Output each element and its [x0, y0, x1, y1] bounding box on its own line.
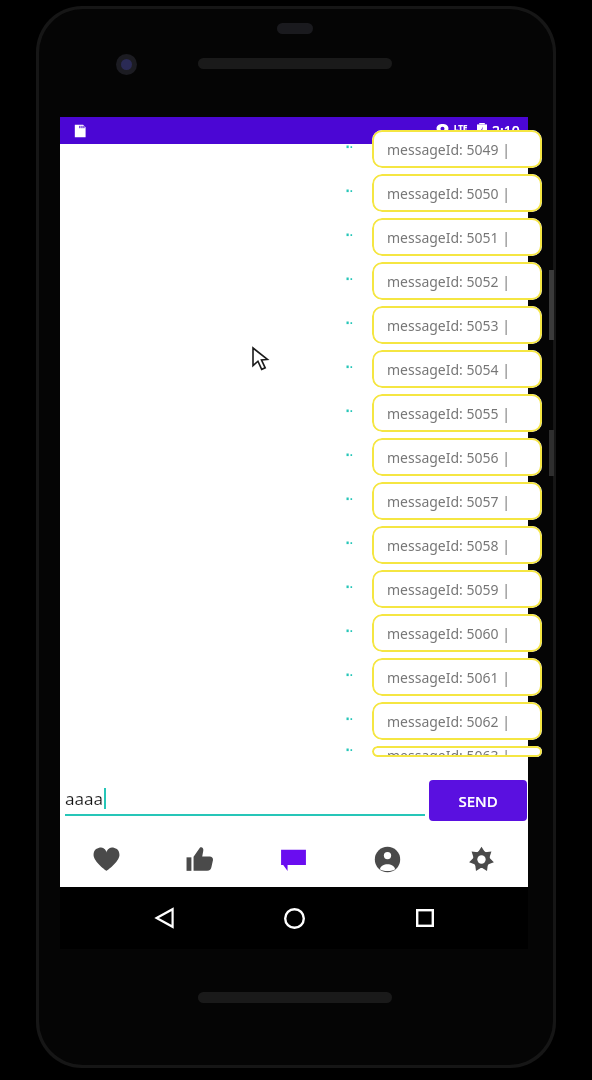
staticText: messageId: 5059 |: [387, 580, 510, 599]
button[interactable]: aaaa: [65, 787, 425, 816]
button[interactable]: messageId: 5049 |: [372, 130, 542, 168]
button[interactable]: Account: [340, 831, 434, 887]
button[interactable]: Home: [275, 899, 313, 937]
button[interactable]: messageId: 5053 |: [372, 306, 542, 344]
button[interactable]: messageId: 5063 |: [372, 746, 542, 757]
button[interactable]: Likes: [153, 831, 246, 887]
staticText: 2:10: [492, 121, 520, 140]
button[interactable]: messageId: 5056 |: [372, 438, 542, 476]
button[interactable]: messageId: 5052 |: [372, 262, 542, 300]
button[interactable]: messageId: 5055 |: [372, 394, 542, 432]
button[interactable]: SEND: [429, 780, 527, 821]
staticText: messageId: 5056 |: [387, 448, 510, 467]
button[interactable]: messageId: 5050 |: [372, 174, 542, 212]
button[interactable]: messageId: 5060 |: [372, 614, 542, 652]
staticText: messageId: 5060 |: [387, 624, 510, 643]
button[interactable]: Messages: [246, 831, 340, 887]
staticText: messageId: 5055 |: [387, 404, 510, 423]
staticText: messageId: 5054 |: [387, 360, 510, 379]
staticText: messageId: 5051 |: [387, 228, 510, 247]
button[interactable]: Settings: [434, 831, 528, 887]
button[interactable]: Recent apps: [406, 899, 444, 937]
button[interactable]: messageId: 5054 |: [372, 350, 542, 388]
staticText: messageId: 5050 |: [387, 184, 510, 203]
staticText: messageId: 5062 |: [387, 712, 510, 731]
staticText: messageId: 5061 |: [387, 668, 510, 687]
staticText: messageId: 5049 |: [387, 140, 510, 159]
staticText: messageId: 5058 |: [387, 536, 510, 555]
button[interactable]: Back: [146, 899, 184, 937]
button[interactable]: messageId: 5061 |: [372, 658, 542, 696]
button[interactable]: Favorites: [60, 831, 153, 887]
button[interactable]: messageId: 5051 |: [372, 218, 542, 256]
staticText: LTE: [454, 122, 468, 133]
staticText: messageId: 5063 |: [387, 746, 510, 757]
staticText: messageId: 5053 |: [387, 316, 510, 335]
button[interactable]: messageId: 5057 |: [372, 482, 542, 520]
button[interactable]: messageId: 5062 |: [372, 702, 542, 740]
staticText: SEND: [458, 791, 498, 811]
button[interactable]: messageId: 5058 |: [372, 526, 542, 564]
staticText: aaaa: [65, 787, 104, 810]
staticText: messageId: 5052 |: [387, 272, 510, 291]
staticText: messageId: 5057 |: [387, 492, 510, 511]
button[interactable]: messageId: 5059 |: [372, 570, 542, 608]
